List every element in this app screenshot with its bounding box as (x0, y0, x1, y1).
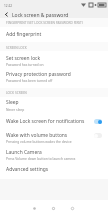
button[interactable] (0, 69, 108, 86)
button[interactable] (0, 147, 108, 164)
staticText: Advanced settings (6, 166, 49, 173)
staticText: Add fingerprint (6, 31, 42, 38)
staticText: Password has turned on (6, 62, 44, 66)
staticText: SCREEN LOCK (6, 46, 27, 50)
button[interactable]: Home (47, 202, 59, 214)
button[interactable]: Back (2, 10, 11, 19)
staticText: Privacy protection password (6, 71, 71, 78)
staticText: Never sleep (6, 107, 25, 111)
staticText: Wake with volume buttons (6, 132, 68, 139)
button[interactable] (0, 27, 108, 42)
staticText: LOCK SCREEN (6, 91, 27, 95)
staticText: Set screen lock (6, 55, 41, 62)
button[interactable]: Recents (28, 202, 40, 214)
button[interactable] (0, 130, 108, 147)
staticText: Wake Lock screen for notifications (6, 118, 85, 125)
button[interactable]: Back (66, 202, 78, 214)
staticText: Pressing volume buttons wakes the device (6, 139, 72, 143)
staticText: 12:22 (4, 4, 13, 8)
staticText: Password has been turned off (6, 78, 53, 82)
staticText: Press Volume down button to launch camer… (6, 156, 76, 160)
button[interactable] (0, 52, 108, 69)
button[interactable] (0, 162, 108, 177)
staticText: Lock screen & password (12, 12, 69, 19)
staticText: Sleep (6, 99, 19, 106)
staticText: FINGERPRINT (SET LOCK SCREEN PASSWORD FI… (6, 21, 83, 25)
button[interactable] (0, 114, 108, 129)
button[interactable] (0, 97, 108, 114)
staticText: Launch Camera (6, 149, 42, 156)
